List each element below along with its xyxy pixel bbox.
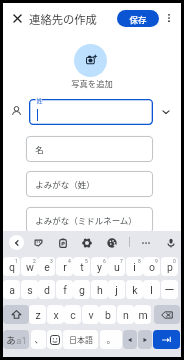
staticText: よみがな（ミドルネーム） bbox=[35, 214, 137, 226]
staticText: 9 bbox=[155, 258, 158, 264]
staticText: 連絡先の作成 bbox=[29, 11, 97, 27]
button[interactable]: Emoji bbox=[47, 330, 62, 349]
staticText: 5 bbox=[85, 258, 88, 264]
button[interactable]: Theme bbox=[104, 235, 120, 250]
button[interactable]: よみがな（姓） bbox=[26, 171, 153, 197]
staticText: 4 bbox=[68, 258, 71, 264]
button[interactable]: l bbox=[143, 280, 160, 299]
button[interactable]: v bbox=[82, 305, 99, 324]
button[interactable]: p bbox=[161, 257, 178, 276]
button[interactable]: 保存 bbox=[117, 10, 159, 27]
staticText: 姓 bbox=[36, 96, 43, 105]
staticText: k bbox=[132, 284, 138, 296]
button[interactable]: k bbox=[126, 280, 143, 299]
staticText: v bbox=[88, 309, 94, 321]
button[interactable]: Shift bbox=[3, 305, 29, 324]
staticText: l bbox=[150, 284, 153, 296]
button[interactable]: 日本語 bbox=[63, 330, 98, 349]
staticText: x bbox=[53, 309, 59, 321]
button[interactable]: o bbox=[143, 257, 160, 276]
staticText: 保存 bbox=[129, 13, 147, 25]
button[interactable]: x bbox=[47, 305, 64, 324]
button[interactable]: b bbox=[99, 305, 116, 324]
button[interactable]: a bbox=[3, 280, 20, 299]
button[interactable]: y bbox=[91, 257, 108, 276]
button[interactable]: 姓 bbox=[29, 99, 153, 125]
staticText: r bbox=[63, 261, 67, 273]
button[interactable]: g bbox=[73, 280, 90, 299]
button[interactable]: Move cursor right bbox=[138, 330, 152, 349]
button[interactable]: r bbox=[56, 257, 73, 276]
staticText: 写真を追加 bbox=[71, 77, 113, 89]
button[interactable]: Switch input mode bbox=[3, 330, 29, 349]
staticText: a1 bbox=[16, 335, 27, 346]
staticText: e bbox=[44, 261, 50, 273]
button[interactable]: Move cursor left bbox=[123, 330, 137, 349]
button[interactable]: n bbox=[117, 305, 134, 324]
staticText: 2 bbox=[33, 258, 36, 264]
staticText: q bbox=[9, 261, 15, 273]
button[interactable]: Expand name fields bbox=[159, 105, 173, 119]
staticText: c bbox=[70, 309, 76, 321]
button[interactable]: ー bbox=[161, 280, 178, 299]
button[interactable]: h bbox=[91, 280, 108, 299]
staticText: b bbox=[105, 309, 111, 321]
button[interactable]: z bbox=[29, 305, 46, 324]
staticText: g bbox=[79, 284, 85, 296]
button[interactable]: c bbox=[64, 305, 81, 324]
staticText: i bbox=[133, 261, 136, 273]
button[interactable]: More bbox=[138, 235, 154, 250]
button[interactable]: Close bbox=[9, 10, 25, 26]
button[interactable]: Settings bbox=[79, 235, 95, 250]
staticText: 名 bbox=[35, 143, 44, 155]
button[interactable]: More options bbox=[161, 10, 176, 26]
staticText: ー bbox=[164, 282, 175, 297]
staticText: 3 bbox=[50, 258, 53, 264]
button[interactable]: Voice input bbox=[163, 235, 179, 250]
button[interactable]: s bbox=[21, 280, 38, 299]
staticText: d bbox=[44, 284, 50, 296]
button[interactable]: w bbox=[21, 257, 38, 276]
staticText: s bbox=[27, 284, 33, 296]
button[interactable]: d bbox=[38, 280, 55, 299]
staticText: 。 bbox=[106, 333, 116, 346]
staticText: 8 bbox=[138, 258, 141, 264]
button[interactable]: t bbox=[73, 257, 90, 276]
staticText: j bbox=[115, 284, 118, 296]
staticText: 日本語 bbox=[69, 334, 93, 346]
button[interactable]: j bbox=[108, 280, 125, 299]
staticText: あ bbox=[6, 333, 16, 347]
button[interactable]: Next field bbox=[153, 330, 180, 349]
button[interactable]: Clipboard bbox=[55, 235, 71, 250]
button[interactable]: m bbox=[134, 305, 151, 324]
staticText: m bbox=[138, 309, 148, 321]
button[interactable]: Sticker bbox=[30, 235, 46, 250]
button[interactable]: 。 bbox=[100, 330, 122, 349]
button[interactable]: u bbox=[108, 257, 125, 276]
staticText: f bbox=[63, 284, 67, 296]
staticText: n bbox=[123, 309, 129, 321]
button[interactable]: e bbox=[38, 257, 55, 276]
staticText: h bbox=[97, 284, 103, 296]
staticText: z bbox=[35, 309, 41, 321]
staticText: 7 bbox=[120, 258, 123, 264]
button[interactable]: Add photo bbox=[74, 44, 107, 77]
staticText: u bbox=[114, 261, 120, 273]
button[interactable]: 名 bbox=[26, 136, 153, 162]
button[interactable]: 、 bbox=[31, 330, 46, 349]
button[interactable]: i bbox=[126, 257, 143, 276]
staticText: w bbox=[26, 261, 34, 273]
button[interactable]: Back bbox=[9, 235, 24, 250]
staticText: y bbox=[97, 261, 102, 273]
staticText: 1 bbox=[15, 258, 18, 264]
staticText: 、 bbox=[34, 333, 44, 346]
staticText: a bbox=[9, 284, 15, 296]
button[interactable]: f bbox=[56, 280, 73, 299]
staticText: よみがな（姓） bbox=[35, 178, 95, 190]
staticText: 0 bbox=[173, 258, 176, 264]
staticText: 6 bbox=[103, 258, 106, 264]
button[interactable]: q bbox=[3, 257, 20, 276]
button[interactable]: よみがな（ミドルネーム） bbox=[26, 207, 153, 233]
staticText: o bbox=[149, 261, 155, 273]
button[interactable]: Backspace bbox=[154, 305, 180, 324]
